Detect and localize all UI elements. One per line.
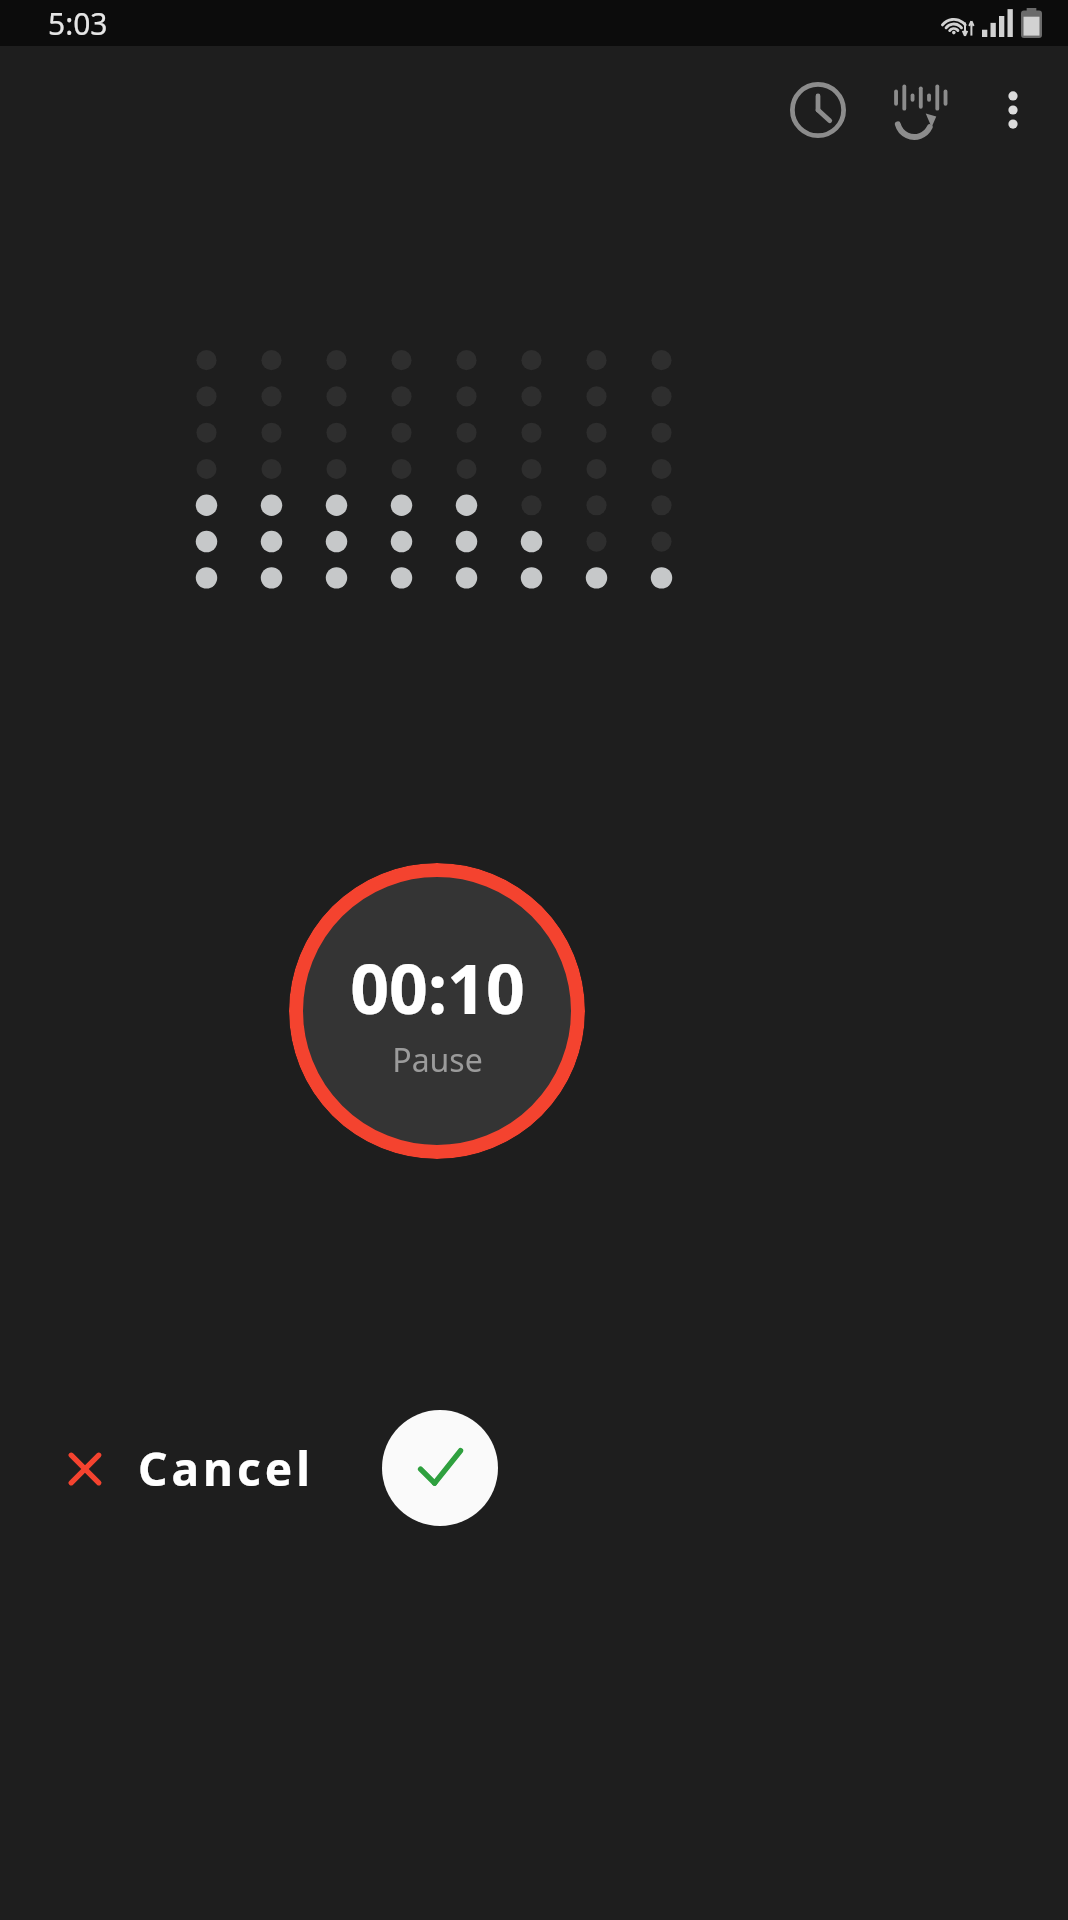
button[interactable]: 00:10 <box>289 863 585 1159</box>
staticText: Pause <box>392 1038 483 1082</box>
button[interactable]: More options <box>968 60 1058 160</box>
staticText: 00:10 <box>350 941 525 1034</box>
button[interactable]: Recent timers <box>768 60 868 160</box>
staticText: 5:03 <box>48 3 108 44</box>
button[interactable]: Cancel <box>52 1423 324 1514</box>
staticText: Cancel <box>138 1437 314 1500</box>
button[interactable]: Confirm <box>382 1410 498 1526</box>
button[interactable]: Sound settings <box>868 60 968 160</box>
